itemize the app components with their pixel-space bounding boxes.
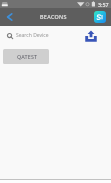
button[interactable]: QATEST bbox=[3, 49, 49, 64]
button[interactable]: Upload bbox=[85, 30, 97, 42]
staticText: BEACONS bbox=[40, 13, 67, 20]
staticText: 3:57 bbox=[98, 1, 109, 8]
button[interactable]: App icon bbox=[94, 11, 106, 23]
staticText: Search Device bbox=[16, 32, 49, 39]
button[interactable]: Back bbox=[0, 8, 18, 26]
staticText: QATEST bbox=[17, 53, 38, 60]
